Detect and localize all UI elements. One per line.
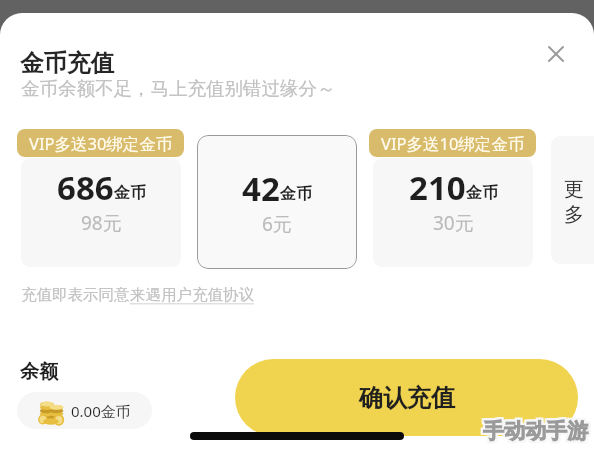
staticText: 充值即表示同意 bbox=[21, 285, 130, 305]
staticText: 30元 bbox=[433, 210, 474, 236]
staticText: 金币充值 bbox=[20, 48, 114, 78]
staticText: 更 bbox=[564, 177, 584, 202]
staticText: 手动动手游 bbox=[485, 418, 590, 444]
staticText: VIP多送30绑定金币 bbox=[29, 132, 173, 155]
staticText: 686 bbox=[57, 165, 114, 210]
button[interactable]: 确认充值 bbox=[235, 359, 578, 436]
staticText: 手动动手游 bbox=[481, 420, 586, 446]
staticText: 0.00金币 bbox=[71, 401, 131, 421]
staticText: 手动动手游 bbox=[483, 418, 588, 444]
staticText: 多 bbox=[564, 202, 584, 227]
staticText: 210 bbox=[409, 165, 466, 210]
staticText: 金币 bbox=[114, 183, 146, 203]
staticText: 手动动手游 bbox=[481, 416, 586, 442]
staticText: 余额 bbox=[20, 360, 58, 384]
staticText: 手动动手游 bbox=[485, 420, 590, 446]
staticText: 手动动手游 bbox=[481, 418, 586, 444]
staticText: 手动动手游 bbox=[483, 420, 588, 446]
staticText: 确认充值 bbox=[359, 383, 455, 413]
button[interactable]: 210 bbox=[373, 158, 533, 267]
button[interactable]: 686 bbox=[21, 158, 181, 267]
staticText: 42 bbox=[242, 166, 280, 211]
button[interactable]: 充值即表示同意 bbox=[21, 285, 254, 305]
staticText: 金币余额不足，马上充值别错过缘分～ bbox=[21, 77, 336, 100]
staticText: 手动动手游 bbox=[485, 416, 590, 442]
button[interactable]: 0.00金币 bbox=[17, 392, 152, 429]
button[interactable]: 42 bbox=[197, 135, 357, 269]
staticText: 金币 bbox=[280, 184, 312, 204]
staticText: 金币 bbox=[466, 183, 498, 203]
staticText: 手动动手游 bbox=[483, 416, 588, 442]
staticText: 98元 bbox=[81, 210, 122, 236]
staticText: 来遇用户充值协议 bbox=[130, 285, 254, 305]
staticText: 6元 bbox=[262, 211, 292, 237]
button[interactable]: Close bbox=[538, 36, 574, 72]
staticText: VIP多送10绑定金币 bbox=[381, 132, 525, 155]
button[interactable]: 更 bbox=[551, 136, 594, 264]
